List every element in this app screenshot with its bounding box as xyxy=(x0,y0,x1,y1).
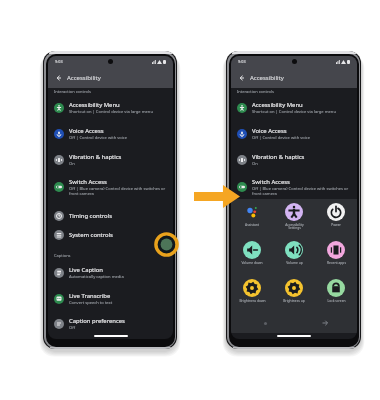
staticText: Brightness up xyxy=(283,298,305,302)
staticText: System controls xyxy=(69,231,113,239)
button[interactable]: Switch Access xyxy=(231,174,357,200)
staticText: Caption preferences xyxy=(69,317,125,325)
button[interactable]: Assistant xyxy=(231,199,273,237)
button[interactable]: Next page xyxy=(319,317,331,329)
staticText: Voice Access xyxy=(252,127,287,135)
staticText: Off | Control device with voice xyxy=(69,135,128,141)
staticText: Live Caption xyxy=(69,266,103,274)
staticText: Interaction controls xyxy=(237,89,274,94)
staticText: Captions xyxy=(54,253,71,258)
staticText: Power xyxy=(331,222,341,226)
staticText: Interaction controls xyxy=(54,89,91,94)
button[interactable]: Lock screen xyxy=(315,275,357,313)
staticText: Switch Access xyxy=(69,178,107,186)
button[interactable]: Vibration & haptics xyxy=(48,147,173,173)
button[interactable]: System controls xyxy=(48,222,173,248)
staticText: Vibration & haptics xyxy=(69,153,122,161)
button[interactable]: Live Caption xyxy=(48,260,173,286)
button[interactable]: Voice Access xyxy=(231,121,357,147)
button[interactable]: Volume down xyxy=(231,237,273,275)
staticText: Captions xyxy=(237,253,254,258)
staticText: Off | Blue camera) Control device with s… xyxy=(252,186,349,196)
staticText: Convert speech to text xyxy=(69,300,113,306)
button[interactable]: Live Transcribe xyxy=(48,286,173,312)
button[interactable]: Accessibility button xyxy=(154,232,179,257)
staticText: Automatically caption media xyxy=(69,274,124,280)
staticText: Accessibility xyxy=(250,74,284,82)
staticText: 9:03 xyxy=(238,59,246,64)
button[interactable]: Voice Access xyxy=(48,121,173,147)
staticText: Convert speech to text xyxy=(252,300,296,306)
button[interactable]: Vibration & haptics xyxy=(231,147,357,173)
button[interactable]: Switch Access xyxy=(48,174,173,200)
staticText: Accessibility xyxy=(67,74,101,82)
button[interactable]: Accessibility Menu xyxy=(231,95,357,121)
button[interactable]: Caption preferences xyxy=(48,311,173,337)
button[interactable]: Accessibility Settings xyxy=(273,199,315,237)
staticText: Switch Access xyxy=(252,178,290,186)
staticText: Off xyxy=(69,325,76,331)
button[interactable]: Caption preferences xyxy=(231,311,357,337)
button[interactable]: Power xyxy=(315,199,357,237)
staticText: Timing controls xyxy=(252,212,295,220)
staticText: Live Transcribe xyxy=(252,292,294,300)
button[interactable]: Back xyxy=(234,71,247,84)
staticText: Brightness down xyxy=(239,298,266,302)
button[interactable]: Timing controls xyxy=(48,203,173,229)
staticText: Shortcut on | Control device via large m… xyxy=(69,109,153,115)
staticText: Accessibility Settings xyxy=(285,222,304,230)
staticText: Vibration & haptics xyxy=(252,153,305,161)
staticText: Caption preferences xyxy=(252,317,308,325)
staticText: Off | Control device with voice xyxy=(252,135,311,141)
button[interactable]: Volume up xyxy=(273,237,315,275)
button[interactable]: System controls xyxy=(231,222,357,248)
button[interactable]: Brightness down xyxy=(231,275,273,313)
staticText: Assistant xyxy=(245,222,259,226)
staticText: Timing controls xyxy=(69,212,112,220)
staticText: Live Transcribe xyxy=(69,292,111,300)
staticText: Recent apps xyxy=(327,260,346,264)
staticText: Voice Access xyxy=(69,127,104,135)
staticText: Volume down xyxy=(241,260,263,264)
button[interactable]: Brightness up xyxy=(273,275,315,313)
button[interactable]: Timing controls xyxy=(231,203,357,229)
button[interactable]: Recent apps xyxy=(315,237,357,275)
staticText: 9:03 xyxy=(55,59,63,64)
staticText: Accessibility Menu xyxy=(252,101,303,109)
staticText: Automatically caption media xyxy=(252,274,307,280)
staticText: Lock screen xyxy=(327,298,346,302)
button[interactable]: Live Transcribe xyxy=(231,286,357,312)
button[interactable]: Live Caption xyxy=(231,260,357,286)
button[interactable]: Accessibility Menu xyxy=(48,95,173,121)
button[interactable]: Back xyxy=(51,71,64,84)
staticText: Volume up xyxy=(286,260,303,264)
staticText: Off | Blue camera) Control device with s… xyxy=(69,186,166,196)
staticText: Shortcut on | Control device via large m… xyxy=(252,109,336,115)
staticText: On xyxy=(69,161,75,167)
staticText: Accessibility Menu xyxy=(69,101,120,109)
staticText: On xyxy=(252,161,258,167)
